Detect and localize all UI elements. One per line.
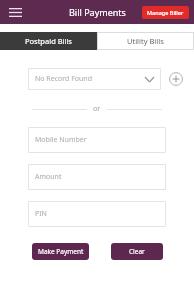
staticText: Postpaid Bills (25, 36, 72, 46)
staticText: Utility Bills (127, 36, 164, 46)
staticText: No Record Found (35, 74, 145, 84)
staticText: Amount (35, 172, 62, 182)
staticText: Clear (129, 247, 145, 256)
button[interactable]: Open navigation menu (5, 2, 25, 22)
button[interactable]: Manage Biller (142, 6, 189, 19)
button[interactable]: No Record Found (28, 68, 161, 90)
staticText: Manage Biller (147, 9, 184, 16)
staticText: Bill Payments (69, 6, 126, 18)
button[interactable]: Add new biller (168, 71, 184, 87)
staticText: or (93, 104, 101, 114)
staticText: PIN (35, 209, 47, 219)
button[interactable]: Make Payment (32, 243, 89, 260)
staticText: Mobile Number (35, 135, 87, 145)
staticText: Make Payment (38, 247, 84, 256)
button[interactable]: Clear (111, 243, 163, 260)
button[interactable]: Postpaid Bills (0, 32, 97, 50)
button[interactable]: Utility Bills (97, 32, 194, 50)
button[interactable]: Mobile Number (28, 127, 166, 153)
button[interactable]: PIN (28, 201, 166, 227)
button[interactable]: Amount (28, 164, 166, 190)
